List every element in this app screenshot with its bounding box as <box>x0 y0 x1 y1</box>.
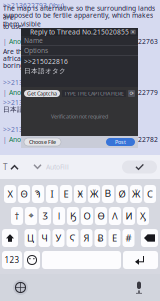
staticText: Ƀ <box>97 232 103 244</box>
staticText: >>213622763 <box>3 78 47 87</box>
button[interactable]: Post <box>106 138 135 146</box>
staticText: И <box>125 210 132 222</box>
staticText: Я <box>83 232 89 244</box>
button[interactable]: Shift <box>2 229 18 247</box>
button[interactable]: Λ <box>109 207 121 225</box>
button[interactable]: E <box>108 229 120 247</box>
button[interactable]: Done <box>122 160 157 173</box>
button[interactable]: Ӽ <box>137 207 149 225</box>
button[interactable]: Ч <box>38 229 50 247</box>
staticText: Get Captcha <box>27 90 57 97</box>
staticText: Anonymous <box>9 37 45 46</box>
staticText: Ø <box>118 188 125 200</box>
staticText: 日本語オタク <box>24 67 66 75</box>
staticText: 123 <box>4 255 19 265</box>
staticText: T <box>3 162 7 172</box>
button[interactable]: Close <box>130 29 136 34</box>
staticText: Ӿ <box>77 188 82 200</box>
button[interactable]: Θ <box>18 185 30 203</box>
staticText: Reply to Thread No.215020855 <box>30 28 129 36</box>
button[interactable]: У <box>52 229 64 247</box>
staticText: Ч <box>41 232 47 244</box>
staticText: Post <box>115 138 126 146</box>
staticText: ǀ <box>57 210 60 222</box>
staticText: supposed to be fertile apparently, which… <box>3 11 153 28</box>
button[interactable]: Ø <box>116 185 128 203</box>
staticText: >>213622779 <box>3 125 47 134</box>
button[interactable]: Dictation <box>134 281 144 294</box>
staticText: I <box>50 188 53 200</box>
staticText: C <box>147 188 153 200</box>
staticText: No.213622779 <box>111 88 158 97</box>
button[interactable]: E <box>60 185 72 203</box>
staticText: Ӽ <box>140 210 146 222</box>
button[interactable]: Ӝ <box>88 185 100 203</box>
staticText: No.213622782 <box>111 135 158 144</box>
button[interactable]: # <box>122 229 134 247</box>
staticText: ⌖ <box>28 211 33 220</box>
button[interactable]: Я <box>80 229 92 247</box>
button[interactable]: Ӿ <box>74 185 86 203</box>
staticText: O <box>83 210 90 222</box>
button[interactable]: Ϡ <box>32 185 44 203</box>
button[interactable]: Ϛ <box>66 229 78 247</box>
button[interactable]: Ƀ <box>94 229 106 247</box>
button[interactable]: Reload captcha <box>128 90 135 97</box>
button[interactable]: O <box>81 207 93 225</box>
button[interactable]: Ц <box>24 229 36 247</box>
staticText: TYPE THE CAPTCHA HERE <box>64 90 124 97</box>
button[interactable]: Ᏼ <box>102 185 114 203</box>
button[interactable]: I <box>46 185 58 203</box>
staticText: Θ <box>20 188 27 200</box>
staticText: Ϛ <box>69 232 75 244</box>
staticText: † <box>14 210 19 222</box>
button[interactable]: Previous field <box>9 161 20 173</box>
button[interactable]: Ӡ <box>39 207 51 225</box>
staticText: Ϡ <box>35 188 41 200</box>
staticText: Ӡ <box>42 210 47 222</box>
button[interactable]: Next field <box>32 161 43 173</box>
staticText: X <box>7 188 12 200</box>
button[interactable]: Ө <box>95 207 107 225</box>
button[interactable]: Ӄ <box>67 207 79 225</box>
staticText: >>213622751 <box>3 98 47 107</box>
staticText: No.213622763 <box>111 37 158 46</box>
staticText: Anonymous <box>9 135 45 144</box>
staticText: Λ <box>112 210 118 222</box>
staticText: Anonymous <box>9 88 45 97</box>
staticText: Ө <box>97 210 104 222</box>
button[interactable]: Ӝ <box>130 185 142 203</box>
button[interactable]: Next keyboard <box>13 280 28 295</box>
staticText: | <box>3 88 7 97</box>
staticText: >>215022816 <box>24 57 68 66</box>
staticText: Ӝ <box>90 188 98 200</box>
staticText: AutoFill <box>46 163 69 171</box>
staticText: Are the <box>3 47 26 56</box>
button[interactable]: ǀ <box>53 207 65 225</box>
staticText: E <box>112 232 117 244</box>
button[interactable]: Return <box>123 251 158 269</box>
button[interactable]: † <box>11 207 23 225</box>
staticText: boring <box>3 61 24 70</box>
staticText: E <box>63 188 68 200</box>
staticText: У <box>55 232 61 244</box>
button[interactable]: ⌖ <box>25 207 37 225</box>
button[interactable]: X <box>4 185 16 203</box>
button[interactable]: Choose File <box>24 138 61 146</box>
staticText: The map is alternative so the surroundin… <box>3 4 155 21</box>
button[interactable]: Emoji <box>24 251 40 269</box>
button[interactable]: C <box>144 185 156 203</box>
staticText: Choose File <box>29 138 56 146</box>
staticText: to use <box>3 22 22 31</box>
button[interactable]: 123 <box>2 251 22 269</box>
staticText: Ӄ <box>70 210 76 222</box>
button[interactable]: Get Captcha <box>24 90 60 97</box>
staticText: | <box>3 135 7 144</box>
staticText: × <box>131 28 135 36</box>
staticText: Verification not required <box>51 113 108 120</box>
button[interactable]: И <box>123 207 135 225</box>
staticText: Ӝ <box>132 188 140 200</box>
button[interactable]: Delete <box>141 229 158 247</box>
staticText: >>213622793 (You) <box>3 1 64 10</box>
